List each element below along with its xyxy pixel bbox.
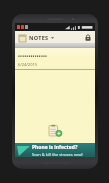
staticText: NOTES — [29, 34, 49, 41]
button[interactable]: NOTES — [29, 33, 54, 42]
staticText: Scan & kill the viruses now! — [32, 152, 83, 157]
button[interactable]: •••••••••••••• — [15, 52, 95, 69]
button[interactable]: Lock notes — [83, 32, 92, 43]
button[interactable]: Phone is infected? — [15, 143, 95, 157]
button[interactable]: App icon — [18, 34, 26, 42]
staticText: •••••••••••••• — [18, 53, 48, 60]
staticText: 6/24/2015 — [18, 62, 37, 67]
button[interactable]: Create new note — [48, 123, 62, 137]
staticText: Phone is infected? — [32, 144, 78, 151]
